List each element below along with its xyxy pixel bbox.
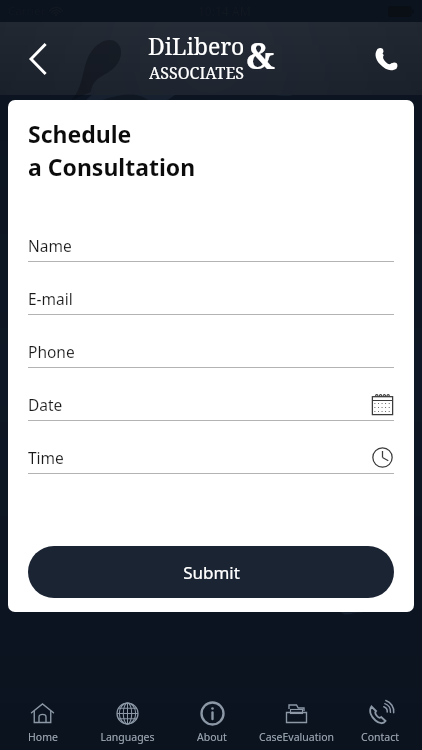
staticText: E-mail [28, 288, 73, 309]
staticText: Submit [183, 561, 240, 584]
staticText: Schedule [28, 118, 132, 149]
staticText: Time [28, 447, 64, 468]
staticText: Languages [100, 730, 155, 744]
button[interactable]: Time [28, 441, 394, 494]
button[interactable]: E-mail [28, 282, 394, 335]
staticText: Home [28, 730, 58, 744]
staticText: CaseEvaluation [259, 730, 334, 744]
button[interactable]: Call [364, 37, 408, 81]
button[interactable]: Contact [338, 694, 422, 750]
staticText: a Consultation [28, 151, 196, 182]
button[interactable]: About [170, 694, 254, 750]
staticText: ASSOCIATES [149, 62, 245, 84]
button[interactable]: Submit [28, 546, 394, 598]
staticText: Phone [28, 341, 75, 362]
button[interactable]: Languages [85, 694, 170, 750]
button[interactable]: Back [18, 39, 58, 79]
staticText: & [246, 31, 275, 80]
button[interactable]: Home [0, 694, 85, 750]
staticText: Date [28, 394, 63, 415]
button[interactable]: Name [28, 229, 394, 282]
staticText: Contact [361, 730, 399, 744]
button[interactable]: Date [28, 388, 394, 441]
button[interactable]: CaseEvaluation [254, 694, 338, 750]
button[interactable]: Phone [28, 335, 394, 388]
staticText: DiLibero [148, 30, 245, 61]
staticText: Name [28, 235, 72, 256]
staticText: About [197, 730, 227, 744]
